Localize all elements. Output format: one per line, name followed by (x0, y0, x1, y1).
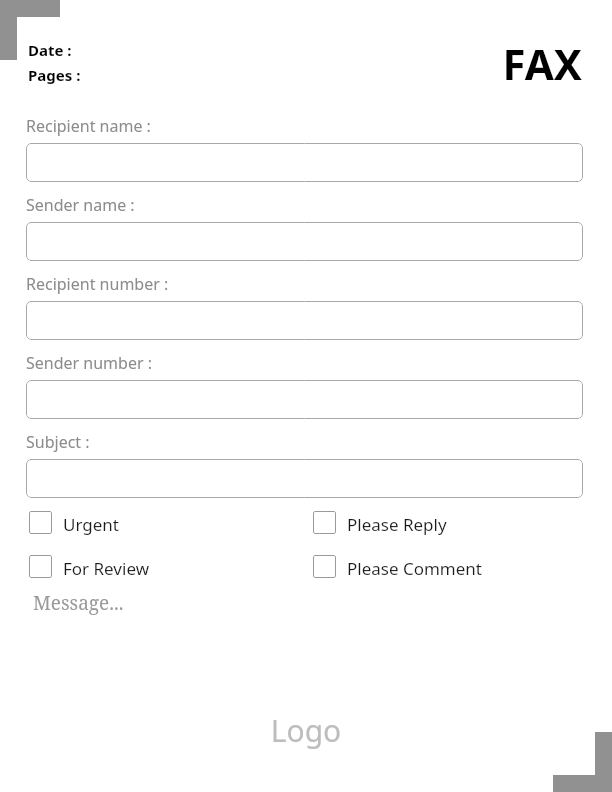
button[interactable]: Logo (206, 710, 406, 754)
button[interactable]: Urgent (29, 511, 85, 534)
staticText: Recipient number : (26, 273, 169, 295)
staticText: For Review (63, 557, 150, 580)
button[interactable]: For Review (29, 555, 116, 578)
staticText: Sender number : (26, 352, 152, 374)
staticText: Message... (33, 590, 124, 616)
button[interactable]: Recipient name : (26, 143, 583, 182)
staticText: Date : (28, 40, 72, 60)
staticText: Logo (206, 710, 406, 754)
staticText: Recipient name : (26, 115, 151, 137)
button[interactable]: Please Comment (313, 555, 448, 578)
button[interactable]: Sender name : (26, 222, 583, 261)
button[interactable]: Recipient number : (26, 301, 583, 340)
staticText: Urgent (63, 513, 119, 536)
staticText: Sender name : (26, 194, 135, 216)
button[interactable]: Please Reply (313, 511, 413, 534)
staticText: Please Reply (347, 513, 447, 536)
button[interactable]: Sender number : (26, 380, 583, 419)
staticText: FAX (382, 35, 582, 91)
staticText: Subject : (26, 431, 90, 453)
staticText: Pages : (28, 65, 81, 85)
button[interactable]: Subject : (26, 459, 583, 498)
staticText: Please Comment (347, 557, 482, 580)
